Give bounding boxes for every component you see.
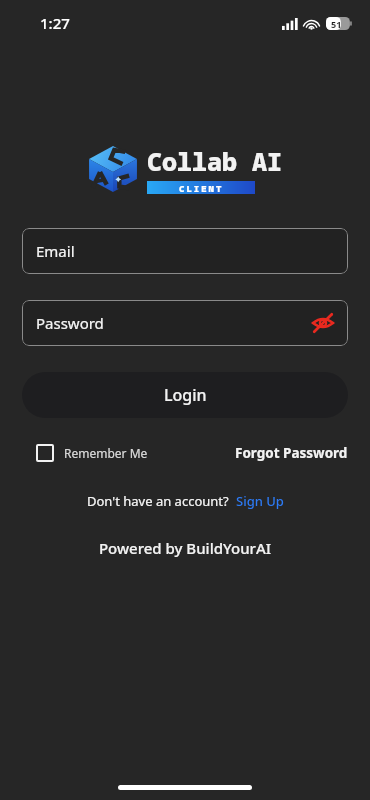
staticText: Forgot Password bbox=[235, 444, 348, 462]
staticText: 1:27 bbox=[40, 13, 70, 33]
button[interactable]: Login bbox=[22, 372, 348, 418]
staticText: CLIENT bbox=[179, 182, 224, 194]
staticText: Powered by BuildYourAI bbox=[0, 538, 370, 558]
button[interactable]: Remember Me bbox=[22, 444, 148, 462]
staticText: Login bbox=[164, 384, 207, 406]
button[interactable]: Email bbox=[22, 228, 348, 274]
staticText: Email bbox=[36, 241, 75, 261]
button[interactable]: Password bbox=[22, 300, 348, 346]
button[interactable]: Show password bbox=[308, 308, 338, 338]
staticText: Remember Me bbox=[64, 445, 148, 461]
staticText: Collab AI bbox=[147, 144, 283, 178]
staticText: Password bbox=[36, 313, 104, 333]
staticText: Sign Up bbox=[236, 492, 284, 510]
button[interactable]: Forgot Password bbox=[235, 444, 348, 462]
button[interactable]: Sign Up bbox=[236, 492, 284, 510]
staticText: 51 bbox=[331, 18, 342, 30]
staticText: Don't have an account? bbox=[87, 492, 229, 510]
